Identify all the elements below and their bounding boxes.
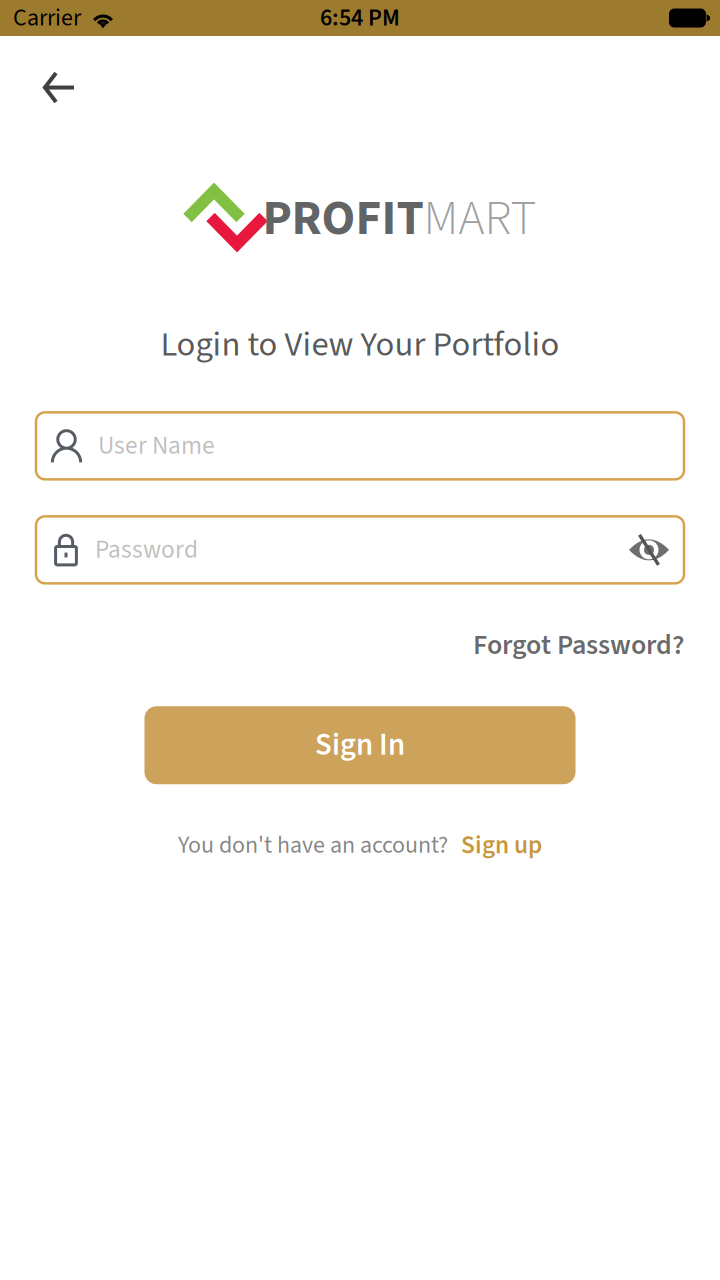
- staticText: User Name: [98, 428, 215, 464]
- staticText: 6:54 PM: [320, 1, 400, 35]
- staticText: Forgot Password?: [473, 625, 684, 665]
- staticText: Sign In: [315, 723, 405, 767]
- staticText: You don't have an account?: [178, 828, 448, 862]
- staticText: MART: [423, 183, 536, 254]
- staticText: Password: [95, 532, 198, 568]
- staticText: Carrier: [13, 1, 81, 35]
- button[interactable]: Back: [0, 54, 102, 117]
- button[interactable]: Show password: [621, 528, 684, 572]
- button[interactable]: Sign In: [144, 706, 575, 784]
- button[interactable]: Forgot Password?: [473, 619, 720, 671]
- button[interactable]: Sign up: [448, 823, 542, 867]
- staticText: Sign up: [461, 827, 542, 863]
- staticText: PROFIT: [262, 183, 423, 254]
- staticText: Login to View Your Portfolio: [160, 320, 559, 369]
